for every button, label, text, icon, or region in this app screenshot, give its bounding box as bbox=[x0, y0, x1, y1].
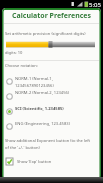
button[interactable] bbox=[4, 104, 99, 119]
staticText: Choose notation: bbox=[5, 63, 38, 69]
staticText: NORM-1 (Normal-1, 1234567890123456) bbox=[15, 76, 54, 88]
staticText: SCI (Scientific, 1.234585) bbox=[15, 106, 64, 112]
staticText: NORM-2 (Normal-2, 123456) bbox=[15, 90, 70, 96]
staticText: digits: 10 bbox=[5, 50, 23, 56]
staticText: 5:05 bbox=[89, 1, 101, 9]
button[interactable] bbox=[4, 134, 99, 155]
button[interactable] bbox=[4, 119, 99, 134]
button[interactable] bbox=[4, 89, 99, 104]
staticText: Show 'Exp' button bbox=[17, 159, 52, 165]
button[interactable] bbox=[4, 155, 99, 169]
button[interactable] bbox=[4, 24, 99, 59]
button[interactable] bbox=[4, 74, 99, 89]
staticText: Show additional Exponent button (to the … bbox=[5, 138, 91, 150]
staticText: ENG (Engineering, 123.4583) bbox=[15, 121, 70, 127]
staticText: Set arithmetic precision (significant di… bbox=[5, 31, 86, 37]
staticText: Calculator Preferences bbox=[12, 11, 92, 21]
